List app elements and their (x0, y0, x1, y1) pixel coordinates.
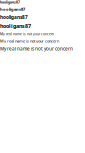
staticText: hooligans87 (0, 6, 25, 12)
staticText: hooligans87 (0, 22, 31, 30)
staticText: My real name is not your concern (0, 46, 73, 52)
staticText: hooligans87 (0, 0, 20, 4)
staticText: My real name is not your concern (0, 32, 54, 36)
staticText: My real name is not your concern (0, 38, 59, 43)
staticText: hooligans87 (0, 14, 28, 20)
